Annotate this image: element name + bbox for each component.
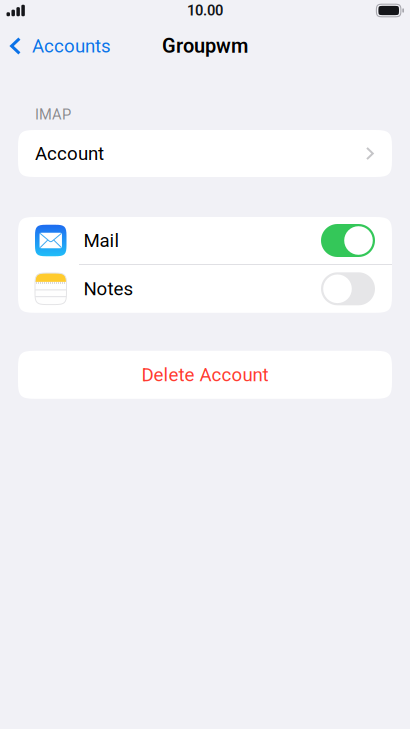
button[interactable]: Account — [18, 130, 392, 177]
staticText: Accounts — [32, 35, 111, 57]
staticText: Account — [35, 143, 104, 164]
button[interactable]: Delete Account — [18, 351, 392, 399]
button[interactable] — [321, 224, 375, 257]
staticText: 10.00 — [187, 2, 223, 19]
button[interactable] — [321, 272, 375, 305]
staticText: Mail — [83, 230, 119, 251]
staticText: Notes — [83, 278, 133, 300]
button[interactable]: Accounts — [0, 29, 111, 63]
staticText: IMAP — [35, 106, 71, 123]
staticText: Groupwm — [162, 34, 248, 58]
staticText: Delete Account — [141, 364, 268, 386]
